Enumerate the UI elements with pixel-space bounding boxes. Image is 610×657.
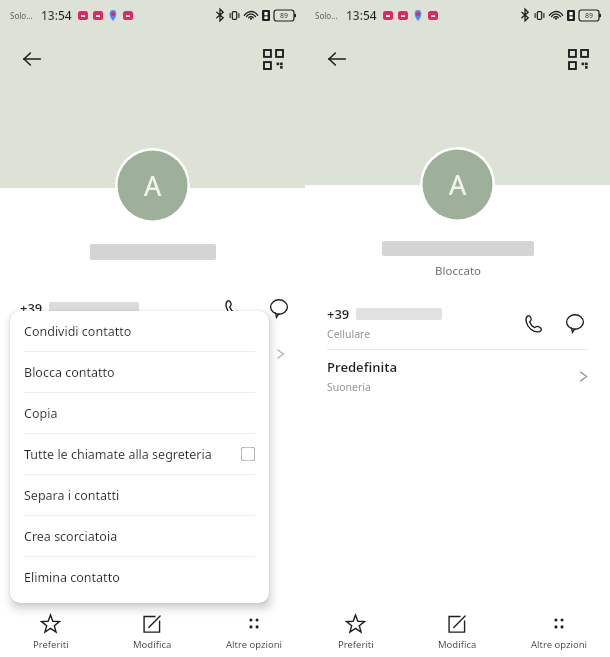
staticText: Tutte le chiamate alla segreteria [24,446,212,463]
staticText: Altre opzioni [226,638,282,651]
staticText: 89 [585,11,594,21]
button[interactable]: Blocca contatto [10,352,269,392]
staticText: Modifica [133,638,172,651]
button[interactable]: Modifica [101,605,203,657]
staticText: Blocca contatto [24,364,115,381]
button[interactable]: Separa i contatti [10,475,269,515]
button[interactable]: Altre opzioni [203,605,305,657]
button[interactable]: Back [317,39,357,79]
button[interactable]: Tutte le chiamate alla segreteria [10,434,269,474]
button[interactable]: Message [560,308,590,338]
button[interactable]: Copia [10,393,269,433]
staticText: +39 [20,299,43,317]
button[interactable]: Back [12,39,52,79]
staticText: 13:54 [41,7,72,23]
staticText: Predefinita [327,358,398,376]
staticText: Suoneria [327,380,371,394]
staticText: 13:54 [346,7,377,23]
staticText: Elimina contatto [24,569,120,586]
staticText: Crea scorciatoia [24,528,118,545]
staticText: Altre opzioni [531,638,587,651]
button[interactable]: +39 [305,297,610,349]
staticText: A [449,166,467,203]
staticText: Copia [24,405,58,422]
button[interactable]: Elimina contatto [10,557,269,597]
button[interactable]: Predefinita [305,350,610,402]
staticText: Preferiti [338,638,374,651]
staticText: Solo... [10,10,33,21]
staticText: Condividi contatto [24,323,132,340]
button[interactable]: QR code [255,41,291,77]
staticText: Separa i contatti [24,487,120,504]
staticText: 89 [280,11,289,21]
staticText: Solo... [315,10,338,21]
staticText: Cellulare [327,327,371,341]
staticText: A [144,167,162,204]
button[interactable]: Crea scorciatoia [10,516,269,556]
button[interactable]: Preferiti [0,605,101,657]
staticText: Bloccato [435,263,481,279]
button[interactable]: QR code [560,41,596,77]
button[interactable]: Modifica [406,605,508,657]
staticText: +39 [327,305,350,323]
button[interactable]: Call [518,308,548,338]
button[interactable]: Preferiti [305,605,406,657]
staticText: Modifica [438,638,477,651]
button[interactable]: Condividi contatto [10,311,269,351]
staticText: Preferiti [33,638,69,651]
button[interactable]: Altre opzioni [508,605,610,657]
